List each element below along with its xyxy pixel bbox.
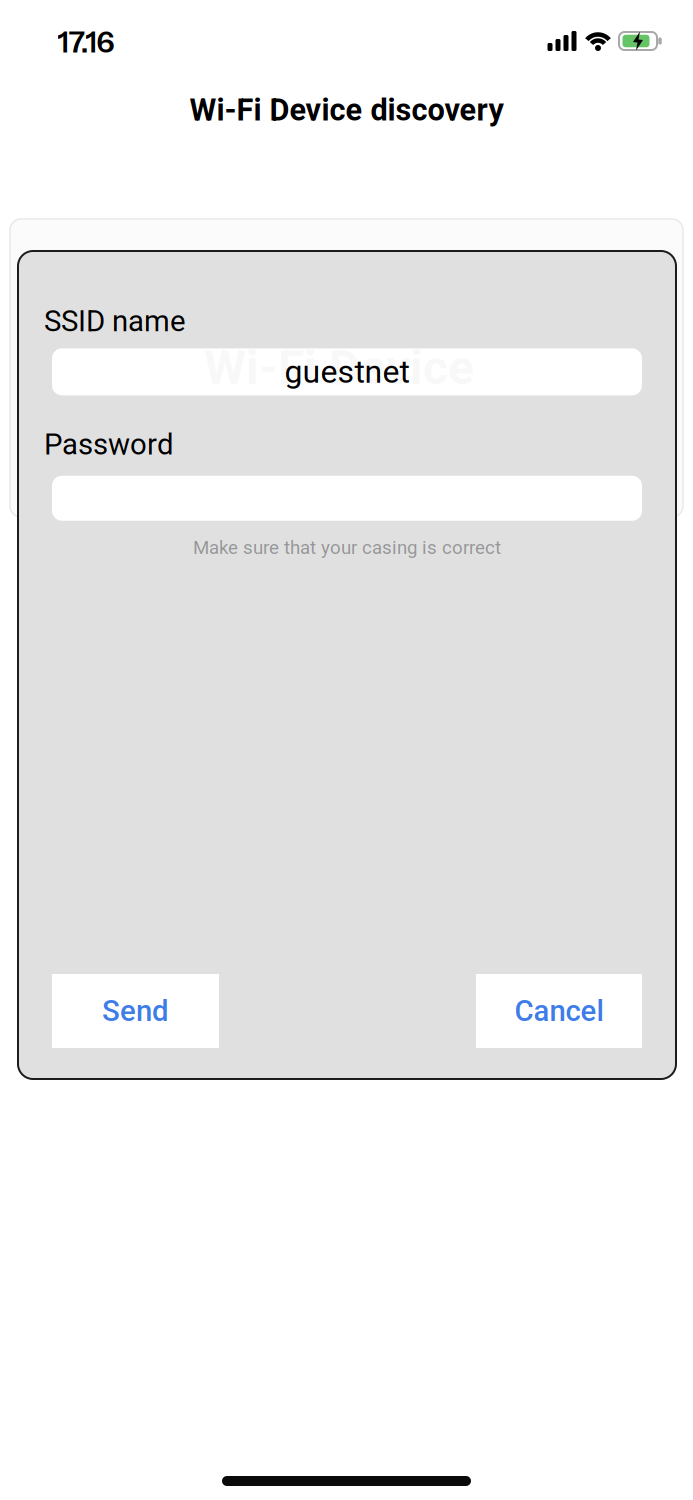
staticText: Password [44, 427, 174, 462]
staticText: Send [102, 994, 169, 1028]
button[interactable]: Send [52, 974, 219, 1048]
staticText: 17.16 [57, 24, 114, 60]
staticText: Wi-Fi Device discovery [189, 92, 503, 128]
button[interactable]: Cancel [476, 974, 642, 1048]
button[interactable]: SSID name text field [52, 348, 642, 395]
staticText: Cancel [514, 994, 603, 1028]
staticText: SSID name [44, 304, 186, 338]
staticText: Wi-Fi Device [204, 340, 474, 396]
staticText: guestnet [284, 353, 409, 391]
staticText: Make sure that your casing is correct [193, 537, 501, 559]
